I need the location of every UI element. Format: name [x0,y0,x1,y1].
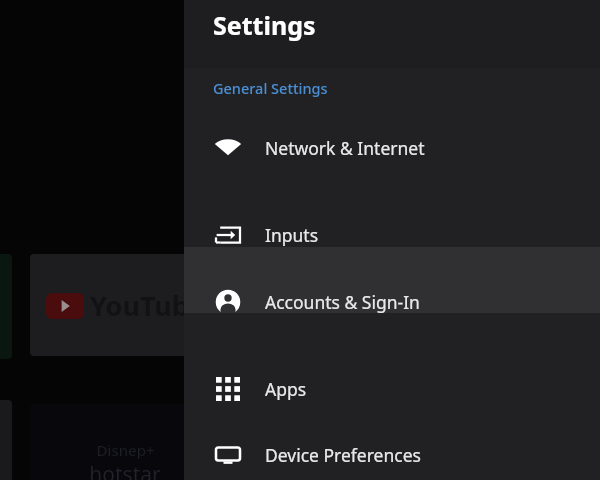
staticText: Apps [265,377,307,401]
staticText: Settings [213,8,316,42]
button[interactable]: Network and Internet [184,126,600,170]
staticText: Network & Internet [265,136,425,160]
staticText: Inputs [265,223,319,247]
other: Inputs [213,220,243,250]
button[interactable]: Inputs [184,213,600,257]
staticText: hotstar [89,460,161,480]
other: Apps [213,374,243,404]
staticText: General Settings [213,78,328,98]
other: Accounts and Sign-In [213,287,243,317]
staticText: YouTube [90,287,205,324]
button[interactable]: Device Preferences [184,433,600,477]
staticText: Accounts & Sign-In [265,290,420,314]
button[interactable]: Accounts and Sign-In [184,280,600,324]
other: Network and Internet [213,133,243,163]
button[interactable]: Apps [184,367,600,411]
other: Device Preferences [213,440,243,470]
staticText: Disnep+ [96,440,155,460]
staticText: Device Preferences [265,443,421,467]
